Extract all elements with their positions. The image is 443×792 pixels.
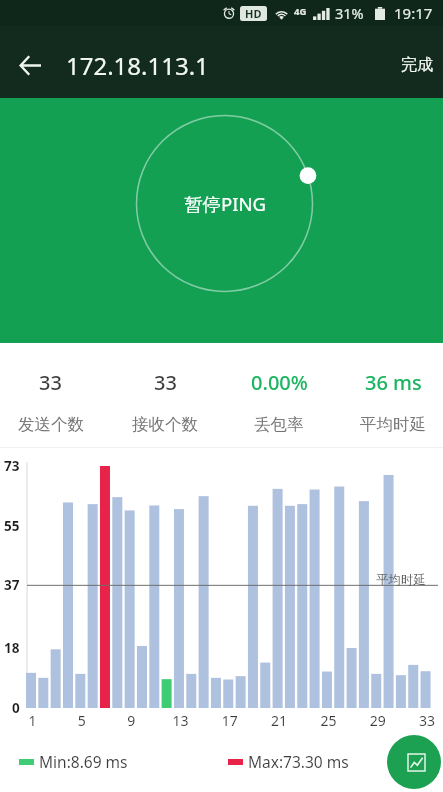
button[interactable]: Back [7, 42, 53, 88]
button[interactable]: 36 ms [336, 356, 443, 435]
button[interactable]: 0.00% [222, 356, 336, 435]
staticText: 平均时延 [360, 414, 426, 435]
staticText: 172.18.113.1 [66, 49, 209, 82]
button[interactable]: 暂停PING [136, 115, 313, 292]
button[interactable]: Max:73.30 ms [222, 745, 355, 778]
button[interactable]: 33 [108, 356, 222, 435]
staticText: 4G [294, 5, 307, 18]
staticText: Max:73.30 ms [248, 751, 349, 772]
button[interactable]: 33 [0, 356, 108, 435]
button[interactable]: Show chart [387, 735, 441, 789]
staticText: 完成 [401, 55, 433, 75]
staticText: 33 [154, 369, 177, 396]
button[interactable]: Min:8.69 ms [13, 745, 134, 778]
staticText: 0.00% [251, 369, 308, 396]
staticText: 31% [335, 3, 364, 23]
staticText: 19:17 [394, 3, 433, 23]
staticText: 丢包率 [254, 414, 304, 435]
staticText: 暂停PING [184, 191, 266, 216]
staticText: HD [245, 6, 262, 21]
staticText: 接收个数 [132, 414, 198, 435]
staticText: 33 [39, 369, 62, 396]
staticText: 36 ms [365, 369, 422, 396]
staticText: Min:8.69 ms [39, 751, 128, 772]
staticText: 发送个数 [18, 414, 84, 435]
button[interactable]: 完成 [390, 46, 443, 84]
